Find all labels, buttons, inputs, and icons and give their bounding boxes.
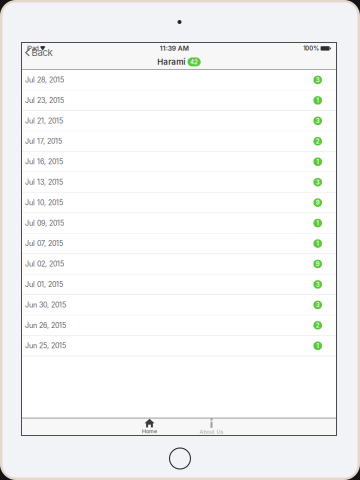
- staticText: Harami: [157, 57, 185, 67]
- staticText: 1: [316, 219, 319, 227]
- staticText: Jul 28, 2015: [25, 76, 64, 84]
- staticText: Jul 17, 2015: [25, 137, 62, 145]
- staticText: 1: [316, 97, 319, 104]
- button[interactable]: Jul 16, 2015: [22, 152, 336, 172]
- button[interactable]: Back: [22, 47, 58, 59]
- staticText: 3: [316, 301, 320, 309]
- button[interactable]: Jun 30, 2015: [22, 295, 336, 315]
- button[interactable]: Jun 25, 2015: [22, 336, 336, 356]
- button[interactable]: Jul 10, 2015: [22, 193, 336, 213]
- staticText: 11:39 AM: [160, 44, 189, 52]
- staticText: 3: [316, 76, 320, 84]
- staticText: Jul 10, 2015: [25, 198, 63, 207]
- staticText: Jun 26, 2015: [25, 321, 66, 330]
- button[interactable]: Jul 01, 2015: [22, 274, 336, 295]
- staticText: About Us: [199, 429, 223, 435]
- staticText: 3: [316, 281, 320, 288]
- staticText: Jul 21, 2015: [25, 117, 63, 125]
- button[interactable]: Jul 21, 2015: [22, 111, 336, 131]
- button[interactable]: Jul 09, 2015: [22, 213, 336, 233]
- staticText: 3: [316, 178, 320, 186]
- button[interactable]: Jul 28, 2015: [22, 70, 336, 90]
- staticText: Jun 25, 2015: [25, 341, 66, 350]
- staticText: Jul 07, 2015: [25, 239, 63, 248]
- staticText: Jul 01, 2015: [25, 280, 63, 289]
- button[interactable]: Jul 07, 2015: [22, 234, 336, 254]
- staticText: Jul 16, 2015: [25, 157, 63, 166]
- button[interactable]: Jul 23, 2015: [22, 90, 336, 111]
- staticText: 1: [316, 158, 319, 165]
- staticText: iPad: [27, 45, 39, 52]
- button[interactable]: Home: [118, 418, 180, 435]
- staticText: 1: [316, 342, 319, 349]
- staticText: Jul 02, 2015: [25, 260, 64, 268]
- staticText: Jun 30, 2015: [25, 301, 66, 309]
- button[interactable]: Jun 26, 2015: [22, 315, 336, 336]
- staticText: Jul 23, 2015: [25, 96, 64, 105]
- button[interactable]: Jul 17, 2015: [22, 131, 336, 152]
- button[interactable]: Jul 02, 2015: [22, 254, 336, 274]
- staticText: 42: [190, 58, 198, 66]
- staticText: 100%: [303, 45, 319, 52]
- staticText: 9: [316, 199, 320, 206]
- staticText: 9: [316, 260, 320, 268]
- staticText: 2: [316, 138, 320, 145]
- staticText: 1: [316, 240, 319, 247]
- staticText: Jul 13, 2015: [25, 178, 63, 186]
- button[interactable]: Jul 13, 2015: [22, 172, 336, 193]
- staticText: 3: [316, 117, 320, 124]
- staticText: Home: [142, 428, 157, 435]
- staticText: Back: [31, 47, 52, 58]
- staticText: Jul 09, 2015: [25, 219, 64, 227]
- staticText: 2: [316, 322, 320, 329]
- button[interactable]: About Us: [180, 418, 242, 435]
